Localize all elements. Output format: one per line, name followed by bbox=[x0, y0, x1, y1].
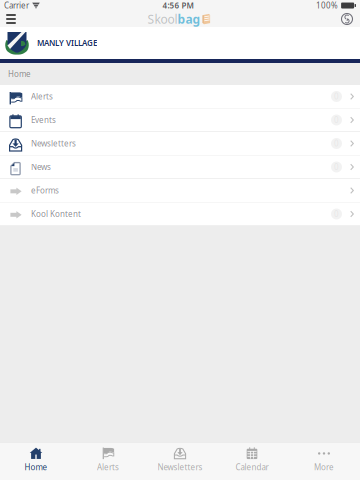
button[interactable]: Menu bbox=[0, 11, 22, 27]
staticText: eForms bbox=[31, 185, 59, 196]
staticText: Alerts bbox=[97, 462, 119, 472]
staticText: More bbox=[314, 462, 334, 472]
button[interactable]: News bbox=[0, 155, 360, 179]
staticText: Newsletters bbox=[157, 462, 202, 472]
button[interactable]: Alerts bbox=[0, 85, 360, 108]
button[interactable]: Calendar bbox=[216, 442, 288, 480]
button[interactable]: Events bbox=[0, 108, 360, 132]
staticText: Alerts bbox=[31, 91, 53, 102]
staticText: bag bbox=[177, 11, 200, 27]
staticText: Home bbox=[8, 69, 31, 79]
staticText: 0 bbox=[334, 209, 339, 219]
staticText: Home bbox=[24, 462, 47, 472]
button[interactable]: eForms bbox=[0, 179, 360, 202]
staticText: Newsletters bbox=[31, 138, 76, 149]
staticText: 100% bbox=[316, 0, 338, 11]
button[interactable]: Kool Kontent bbox=[0, 202, 360, 226]
button[interactable]: More bbox=[288, 442, 360, 480]
staticText: 0 bbox=[334, 138, 339, 149]
staticText: Events bbox=[31, 115, 56, 125]
staticText: Carrier bbox=[4, 0, 29, 11]
button[interactable]: Home bbox=[0, 442, 72, 480]
staticText: Kool Kontent bbox=[31, 209, 81, 219]
button[interactable]: Newsletters bbox=[144, 442, 216, 480]
staticText: 0 bbox=[334, 162, 339, 172]
staticText: 0 bbox=[334, 91, 339, 102]
button[interactable]: Newsletters bbox=[0, 132, 360, 155]
staticText: 4:56 PM bbox=[163, 0, 194, 11]
staticText: 0 bbox=[334, 115, 339, 125]
staticText: Skool bbox=[147, 11, 177, 27]
staticText: News bbox=[31, 162, 51, 172]
button[interactable]: Refresh bbox=[336, 11, 358, 27]
staticText: MANLY VILLAGE bbox=[37, 38, 97, 48]
button[interactable]: Alerts bbox=[72, 442, 144, 480]
staticText: Calendar bbox=[235, 462, 268, 472]
